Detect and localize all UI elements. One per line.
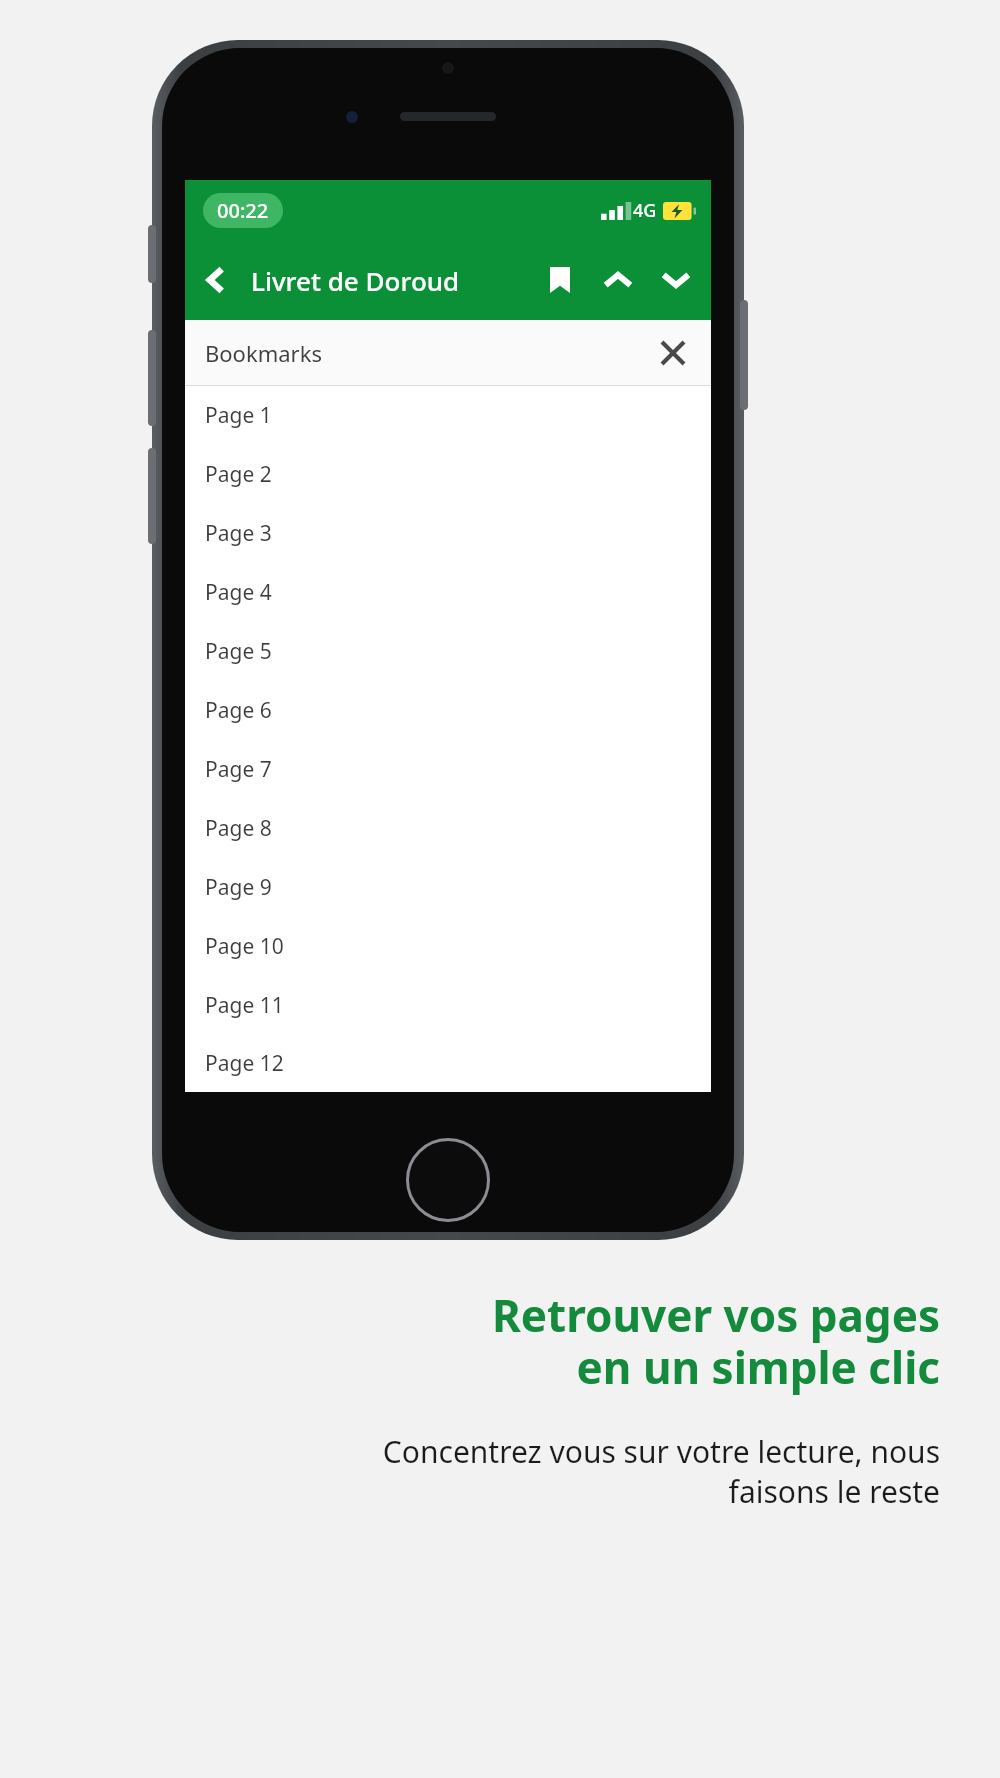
button[interactable]: Page 11 (185, 976, 711, 1035)
staticText: Page 10 (205, 932, 284, 961)
button[interactable]: Next bookmark (647, 251, 705, 309)
button[interactable]: Page 5 (185, 622, 711, 681)
staticText: Page 6 (205, 696, 272, 725)
staticText: Page 8 (205, 814, 272, 843)
staticText: 00:22 (217, 197, 269, 224)
staticText: Page 9 (205, 873, 272, 902)
button[interactable]: Page 2 (185, 445, 711, 504)
button[interactable]: Page 3 (185, 504, 711, 563)
staticText: Retrouver vos pages en un simple clic (60, 1285, 940, 1397)
button[interactable]: Page 9 (185, 858, 711, 917)
button[interactable]: Page 4 (185, 563, 711, 622)
button[interactable]: Previous bookmark (589, 251, 647, 309)
button[interactable]: Page 6 (185, 681, 711, 740)
staticText: Page 2 (205, 460, 272, 489)
button[interactable]: Page 8 (185, 799, 711, 858)
staticText: 4G (633, 198, 657, 223)
staticText: Page 3 (205, 519, 272, 548)
button[interactable]: Page 7 (185, 740, 711, 799)
staticText: Page 12 (205, 1049, 284, 1078)
staticText: Page 11 (205, 991, 284, 1020)
button[interactable]: Page 1 (185, 386, 711, 445)
button[interactable]: Bookmarks (531, 251, 589, 309)
staticText: Livret de Doroud (251, 263, 460, 298)
staticText: Concentrez vous sur votre lecture, nous … (60, 1431, 940, 1512)
button[interactable]: Page 12 (185, 1035, 711, 1092)
staticText: Bookmarks (205, 338, 322, 368)
staticText: Page 4 (205, 578, 272, 607)
button[interactable]: Page 10 (185, 917, 711, 976)
staticText: Page 7 (205, 755, 272, 784)
staticText: Page 1 (205, 401, 272, 430)
staticText: Page 5 (205, 637, 272, 666)
button[interactable]: Bookmarks (185, 320, 711, 386)
button[interactable]: Close (647, 327, 699, 379)
button[interactable]: Back (185, 248, 249, 312)
